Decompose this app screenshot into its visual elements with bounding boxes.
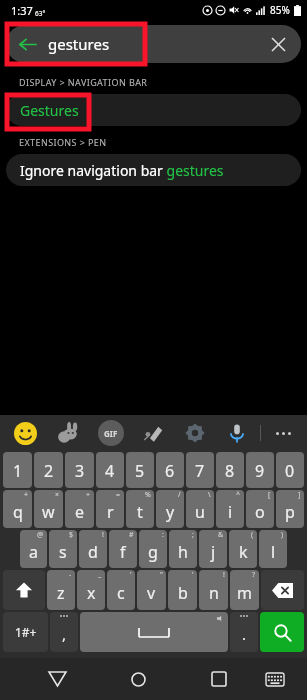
button[interactable]: Handwriting: [140, 420, 166, 446]
staticText: y: [166, 501, 175, 523]
button[interactable]: k: [229, 530, 257, 568]
button[interactable]: g: [139, 530, 167, 568]
staticText: b: [178, 582, 188, 604]
button[interactable]: Home: [120, 661, 156, 697]
staticText: gestures: [48, 34, 110, 54]
button[interactable]: 1: [3, 452, 32, 488]
staticText: ×: [55, 490, 60, 500]
staticText: k: [239, 541, 248, 563]
staticText: ]: [298, 490, 301, 500]
staticText: 8: [225, 460, 235, 482]
button[interactable]: u: [186, 490, 214, 528]
staticText: ÷: [86, 490, 91, 500]
button[interactable]: m: [230, 570, 259, 610]
button[interactable]: 4: [96, 452, 124, 488]
button[interactable]: t: [126, 490, 154, 528]
button[interactable]: 0: [276, 452, 304, 488]
staticText: 9: [255, 460, 265, 482]
button[interactable]: v: [137, 570, 166, 610]
staticText: r: [107, 501, 114, 523]
staticText: Gestures: [20, 101, 79, 120]
staticText: t: [137, 501, 143, 523]
button[interactable]: Back: [39, 661, 75, 697]
button[interactable]: Clear search: [267, 33, 289, 55]
staticText: 0: [285, 460, 295, 482]
button[interactable]: a: [20, 530, 47, 568]
button[interactable]: c: [107, 570, 135, 610]
button[interactable]: Recent apps: [201, 661, 237, 697]
staticText: ^: [236, 490, 241, 500]
button[interactable]: Emoji: [12, 420, 38, 446]
button[interactable]: 3: [65, 452, 94, 488]
staticText: n: [209, 582, 219, 604]
button[interactable]: .: [230, 612, 258, 652]
button[interactable]: j: [199, 530, 227, 568]
staticText: 1#+: [15, 624, 37, 640]
staticText: -: [69, 570, 72, 580]
button[interactable]: Settings: [182, 420, 208, 446]
staticText: DISPLAY > NAVIGATION BAR: [19, 76, 148, 88]
button[interactable]: n: [199, 570, 228, 610]
staticText: w: [42, 501, 55, 523]
button[interactable]: 8: [216, 452, 244, 488]
button[interactable]: ,: [50, 612, 78, 652]
button[interactable]: r: [96, 490, 124, 528]
staticText: m: [237, 582, 252, 604]
button[interactable]: 1#+: [3, 612, 48, 652]
button[interactable]: More options: [271, 421, 295, 445]
button[interactable]: z: [47, 570, 75, 610]
button[interactable]: x: [77, 570, 105, 610]
button[interactable]: f: [109, 530, 137, 568]
staticText: 4: [105, 460, 115, 482]
button[interactable]: Search: [260, 612, 304, 652]
button[interactable]: Gestures: [6, 94, 301, 126]
button[interactable]: h: [169, 530, 197, 568]
button[interactable]: s: [49, 530, 77, 568]
button[interactable]: Stickers: [55, 420, 81, 446]
staticText: \: [208, 490, 211, 500]
button[interactable]: 9: [246, 452, 274, 488]
staticText: =: [116, 490, 121, 500]
button[interactable]: Ignore navigation bar gestures: [6, 154, 301, 186]
staticText: :: [162, 530, 164, 540]
staticText: i: [228, 501, 233, 523]
button[interactable]: i: [216, 490, 244, 528]
button[interactable]: Space: [80, 612, 228, 652]
staticText: 5: [135, 460, 145, 482]
button[interactable]: Back: [6, 25, 301, 63]
button[interactable]: o: [246, 490, 274, 528]
button[interactable]: 5: [126, 452, 154, 488]
button[interactable]: d: [79, 530, 107, 568]
staticText: 3: [75, 460, 85, 482]
staticText: ": [160, 570, 163, 580]
staticText: f: [120, 541, 126, 563]
button[interactable]: p: [276, 490, 304, 528]
button[interactable]: Switch keyboard: [259, 663, 291, 695]
button[interactable]: GIF: [98, 420, 124, 446]
button[interactable]: l: [259, 530, 287, 568]
button[interactable]: w: [34, 490, 63, 528]
staticText: [: [268, 490, 271, 500]
button[interactable]: y: [156, 490, 184, 528]
staticText: 1: [13, 460, 23, 482]
staticText: s: [59, 541, 67, 563]
button[interactable]: 7: [186, 452, 214, 488]
button[interactable]: Backspace: [261, 570, 304, 610]
staticText: /: [178, 490, 181, 500]
staticText: ?: [252, 570, 256, 580]
button[interactable]: q: [3, 490, 32, 528]
staticText: _: [98, 570, 102, 580]
staticText: ,: [62, 624, 67, 644]
button[interactable]: 6: [156, 452, 184, 488]
button[interactable]: Voice input: [224, 420, 250, 446]
button[interactable]: b: [168, 570, 197, 610]
staticText: e: [75, 501, 85, 523]
button[interactable]: 2: [34, 452, 63, 488]
button[interactable]: e: [65, 490, 94, 528]
button[interactable]: Back: [16, 33, 38, 55]
staticText: ': [192, 570, 194, 580]
staticText: $: [69, 530, 74, 540]
button[interactable]: Shift: [3, 570, 45, 610]
staticText: q: [13, 501, 23, 523]
staticText: h: [178, 541, 188, 563]
